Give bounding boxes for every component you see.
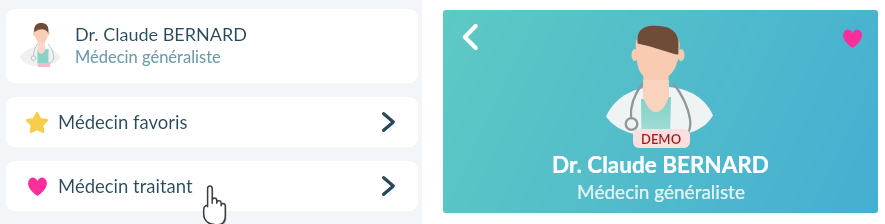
button[interactable]: Back bbox=[451, 18, 489, 56]
staticText: DEMO bbox=[641, 131, 682, 147]
staticText: Médecin traitant bbox=[58, 175, 193, 197]
staticText: Médecin généraliste bbox=[577, 180, 745, 203]
button[interactable]: Médecin traitant bbox=[6, 161, 418, 211]
staticText: Dr. Claude BERNARD bbox=[552, 151, 769, 178]
button[interactable]: Dr. Claude BERNARD bbox=[6, 9, 418, 83]
staticText: Dr. Claude BERNARD bbox=[75, 23, 247, 45]
button[interactable]: Favorite bbox=[833, 24, 871, 52]
staticText: Médecin favoris bbox=[58, 111, 188, 133]
button[interactable]: Médecin favoris bbox=[6, 97, 418, 147]
staticText: Médecin généraliste bbox=[75, 47, 221, 67]
